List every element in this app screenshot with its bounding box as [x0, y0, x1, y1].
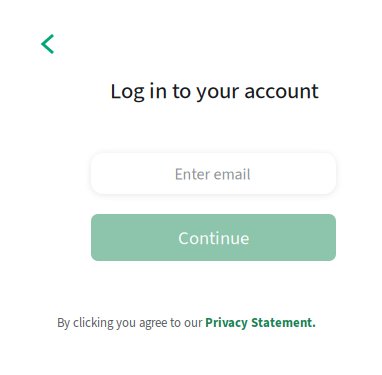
staticText: Privacy Statement. [205, 314, 316, 332]
staticText: Enter email [174, 163, 250, 186]
staticText: Log in to your account [110, 75, 319, 107]
button[interactable]: Privacy Statement. [205, 314, 316, 332]
staticText: By clicking you agree to our [57, 314, 202, 332]
button[interactable]: Back [30, 26, 67, 63]
staticText: Continue [178, 225, 249, 252]
button[interactable]: Continue [91, 214, 336, 261]
